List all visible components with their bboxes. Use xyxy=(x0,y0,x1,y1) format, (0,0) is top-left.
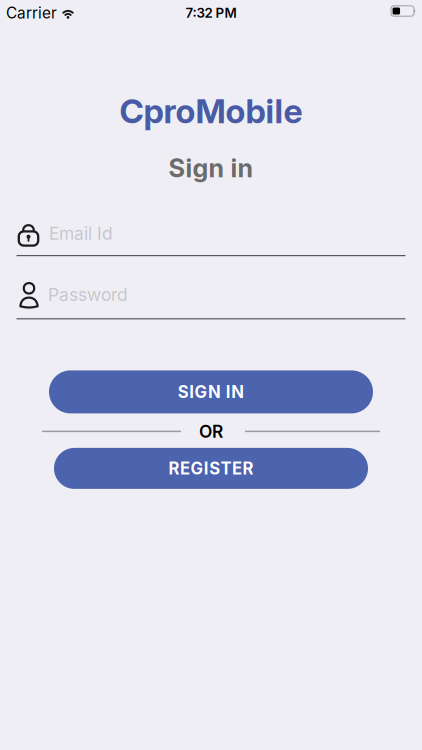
button[interactable]: Password xyxy=(0,278,422,311)
button[interactable]: SIGN IN xyxy=(49,370,373,413)
staticText: Carrier xyxy=(6,4,57,22)
staticText: Email Id xyxy=(49,223,113,244)
button[interactable]: Email Id xyxy=(0,217,422,250)
staticText: Sign in xyxy=(168,153,253,183)
staticText: SIGN IN xyxy=(178,382,244,402)
button[interactable]: REGISTER xyxy=(54,448,368,489)
staticText: CproMobile xyxy=(119,91,302,131)
staticText: Password xyxy=(48,284,128,305)
staticText: OR xyxy=(199,421,223,442)
staticText: REGISTER xyxy=(169,458,253,478)
staticText: 7:32 PM xyxy=(185,5,236,21)
